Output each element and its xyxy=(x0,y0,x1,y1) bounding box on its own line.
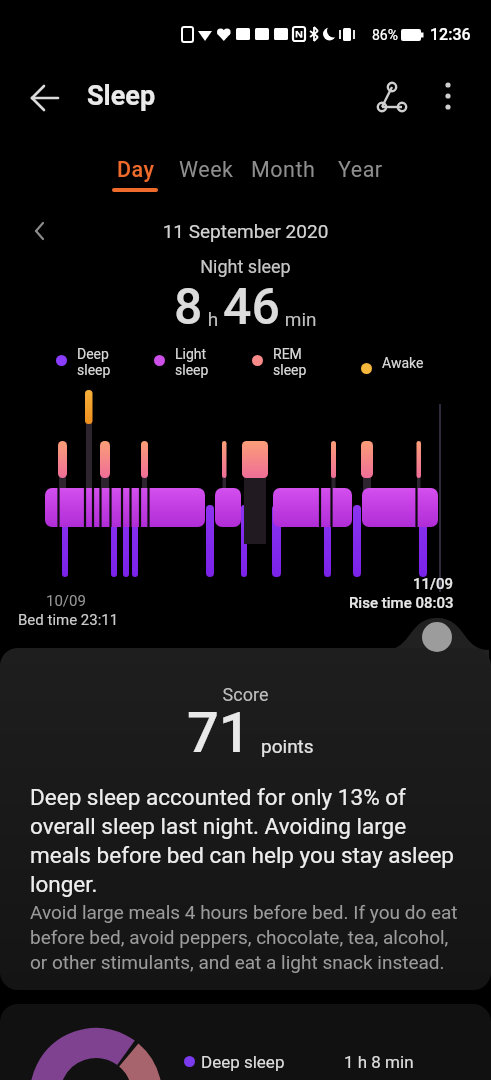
staticText: Sleep xyxy=(87,80,156,112)
button[interactable]: Awake xyxy=(361,346,403,362)
button[interactable]: Day xyxy=(103,157,141,182)
button[interactable]: Deep sleep xyxy=(56,346,90,378)
staticText: 71 xyxy=(187,700,251,766)
staticText: Night sleep xyxy=(0,256,491,277)
staticText: 8 xyxy=(174,278,203,337)
staticText: 11/09 xyxy=(413,575,454,593)
staticText: Week xyxy=(179,157,234,182)
button[interactable] xyxy=(370,76,414,120)
staticText: Year xyxy=(338,157,383,182)
staticText: Deep sleep xyxy=(77,346,111,378)
staticText: Deep sleep xyxy=(201,1052,285,1072)
button[interactable]: REM sleep xyxy=(252,346,286,378)
staticText: Avoid large meals 4 hours before bed. If… xyxy=(30,901,458,973)
staticText: min xyxy=(280,308,317,330)
button[interactable] xyxy=(24,76,68,120)
staticText: 46 xyxy=(223,278,280,337)
staticText: 86% xyxy=(372,27,398,43)
staticText: Deep sleep accounted for only 13% of ove… xyxy=(30,784,458,897)
button[interactable]: Week xyxy=(179,157,234,182)
staticText: Day xyxy=(117,157,155,182)
staticText: 12:36 xyxy=(430,25,471,44)
button[interactable]: Year xyxy=(338,157,383,182)
staticText: 1 h 8 min xyxy=(344,1052,414,1072)
button[interactable]: Month xyxy=(251,157,316,182)
staticText: Score xyxy=(0,684,491,705)
button[interactable] xyxy=(428,76,468,116)
button[interactable]: Light sleep xyxy=(154,346,188,378)
staticText: Awake xyxy=(382,355,424,371)
staticText: Month xyxy=(251,157,316,182)
button[interactable] xyxy=(422,622,452,652)
staticText: Light sleep xyxy=(175,346,209,378)
staticText: 11 September 2020 xyxy=(0,220,491,242)
staticText: Bed time 23:11 xyxy=(18,611,119,629)
staticText: REM sleep xyxy=(273,346,307,378)
staticText: h xyxy=(203,308,223,330)
staticText: points xyxy=(261,735,314,757)
staticText: Rise time 08:03 xyxy=(349,594,454,612)
staticText: 10/09 xyxy=(46,592,86,610)
